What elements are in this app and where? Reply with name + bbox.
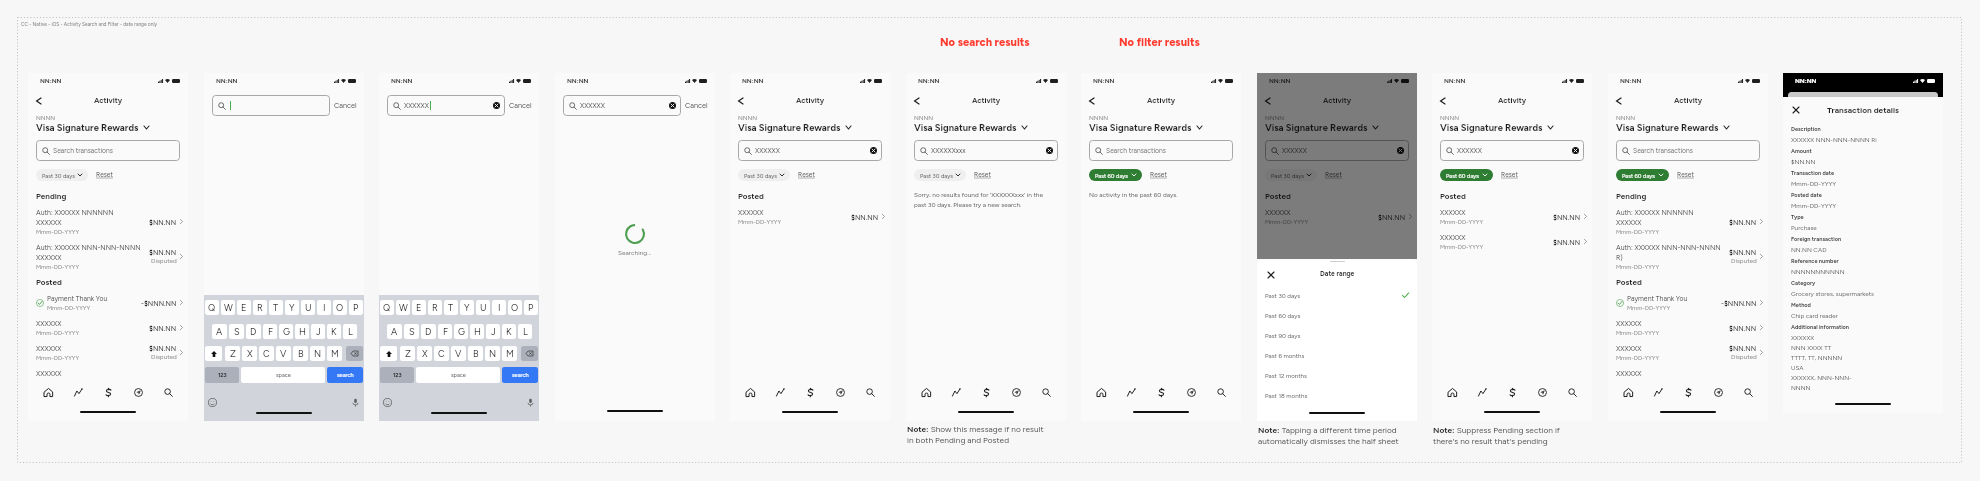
button[interactable]: XXXXXX xyxy=(387,95,505,116)
button[interactable]: Reset xyxy=(974,171,991,179)
button[interactable]: Trends xyxy=(1123,384,1139,400)
button[interactable]: Payments xyxy=(100,384,116,400)
button[interactable]: Reset xyxy=(1501,171,1518,179)
button[interactable]: Home xyxy=(1620,384,1636,400)
button[interactable]: search xyxy=(502,367,538,383)
button[interactable]: Auth: XXXXXX NNN-NNN-NNNN xyxy=(1608,239,1768,274)
button[interactable]: Search xyxy=(862,384,878,400)
button[interactable]: E xyxy=(412,300,426,315)
button[interactable]: X xyxy=(242,346,257,361)
button[interactable]: F xyxy=(263,324,277,339)
button[interactable]: Backspace xyxy=(346,346,363,361)
button[interactable]: D xyxy=(246,324,261,339)
button[interactable]: Visa Signature Rewards xyxy=(1265,122,1378,133)
button[interactable]: Past 18 months xyxy=(1257,385,1417,405)
button[interactable]: M xyxy=(502,346,517,361)
button[interactable]: Back xyxy=(33,96,43,106)
button[interactable]: Clear search xyxy=(493,102,500,109)
button[interactable]: M xyxy=(327,346,342,361)
button[interactable]: XXXXXX xyxy=(28,315,188,340)
button[interactable]: Reset xyxy=(1677,171,1694,179)
button[interactable]: Search xyxy=(1213,384,1229,400)
button[interactable]: Clear search xyxy=(870,147,877,154)
button[interactable]: 123 xyxy=(380,367,414,383)
button[interactable]: Back xyxy=(735,96,745,106)
button[interactable]: H xyxy=(295,324,309,339)
button[interactable]: Cancel xyxy=(509,101,532,110)
button[interactable]: space xyxy=(241,367,325,383)
button[interactable]: Visa Signature Rewards xyxy=(36,122,149,133)
button[interactable]: C xyxy=(434,346,449,361)
button[interactable]: Visa Signature Rewards xyxy=(1089,122,1202,133)
button[interactable]: Past 30 days xyxy=(1257,285,1417,305)
button[interactable]: Trends xyxy=(948,384,964,400)
button[interactable]: S xyxy=(229,324,244,339)
button[interactable]: Past 60 days xyxy=(1440,169,1493,181)
button[interactable]: Trends xyxy=(70,384,86,400)
button[interactable]: T xyxy=(269,300,283,315)
button[interactable]: T xyxy=(444,300,458,315)
button[interactable]: V xyxy=(451,346,466,361)
button[interactable]: Backspace xyxy=(521,346,538,361)
button[interactable]: Back xyxy=(1262,96,1272,106)
button[interactable]: XXXXXX xyxy=(28,340,188,365)
button[interactable]: Clear search xyxy=(1572,147,1579,154)
button[interactable]: I xyxy=(317,300,331,315)
button[interactable]: XXXXXXxxx xyxy=(914,140,1058,161)
button[interactable]: Past 30 days xyxy=(914,169,966,181)
button[interactable]: Trends xyxy=(772,384,788,400)
button[interactable]: XXXXXX xyxy=(1432,229,1592,254)
button[interactable]: XXXXXX xyxy=(1257,204,1417,229)
button[interactable]: XXXXXX xyxy=(738,140,882,161)
button[interactable]: L xyxy=(343,324,357,339)
button[interactable]: XXXXXX xyxy=(563,95,681,116)
button[interactable]: W xyxy=(221,300,235,315)
button[interactable]: Clear search xyxy=(1046,147,1053,154)
button[interactable]: Home xyxy=(1444,384,1460,400)
button[interactable]: Reset xyxy=(1325,171,1342,179)
button[interactable]: Payment Thank You xyxy=(28,290,188,315)
button[interactable]: V xyxy=(276,346,291,361)
button[interactable]: B xyxy=(468,346,483,361)
button[interactable]: Cancel xyxy=(685,101,708,110)
button[interactable]: Offers xyxy=(832,384,848,400)
button[interactable]: Offers xyxy=(1710,384,1726,400)
button[interactable]: Search transactions xyxy=(1089,140,1233,161)
button[interactable]: Reset xyxy=(1150,171,1167,179)
button[interactable]: O xyxy=(333,300,347,315)
button[interactable]: H xyxy=(470,324,484,339)
button[interactable]: Search xyxy=(1564,384,1580,400)
button[interactable] xyxy=(212,95,330,116)
button[interactable]: Reset xyxy=(96,171,113,179)
button[interactable]: Past 60 days xyxy=(1616,169,1669,181)
button[interactable]: Offers xyxy=(130,384,146,400)
button[interactable]: XXXXXX xyxy=(1440,140,1584,161)
button[interactable]: N xyxy=(485,346,500,361)
button[interactable]: Past 30 days xyxy=(36,169,88,181)
button[interactable]: XXXXXX xyxy=(1608,340,1768,365)
button[interactable]: P xyxy=(524,300,538,315)
button[interactable]: Offers xyxy=(1183,384,1199,400)
button[interactable]: Past 12 months xyxy=(1257,365,1417,385)
button[interactable]: Q xyxy=(205,300,219,315)
button[interactable]: XXXXXX xyxy=(730,204,890,229)
button[interactable]: A xyxy=(212,324,227,339)
button[interactable]: Search transactions xyxy=(1616,140,1760,161)
button[interactable]: Y xyxy=(460,300,474,315)
button[interactable]: Z xyxy=(225,346,240,361)
button[interactable]: G xyxy=(454,324,468,339)
button[interactable]: Payments xyxy=(802,384,818,400)
button[interactable]: Visa Signature Rewards xyxy=(914,122,1027,133)
button[interactable]: XXXXXX xyxy=(1265,140,1409,161)
button[interactable]: R xyxy=(253,300,267,315)
button[interactable]: Auth: XXXXXX NNNNNN xyxy=(1608,204,1768,239)
button[interactable]: F xyxy=(438,324,452,339)
button[interactable]: Auth: XXXXXX NNNNNN xyxy=(28,204,188,239)
button[interactable]: C xyxy=(259,346,274,361)
button[interactable]: Auth: XXXXXX NNN-NNN-NNNN xyxy=(28,239,188,274)
button[interactable]: K xyxy=(502,324,516,339)
button[interactable]: Home xyxy=(742,384,758,400)
button[interactable]: Search xyxy=(1740,384,1756,400)
button[interactable]: Home xyxy=(40,384,56,400)
button[interactable]: Offers xyxy=(1534,384,1550,400)
